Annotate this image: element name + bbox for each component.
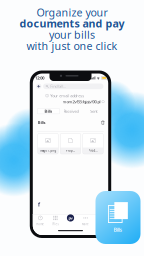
- button[interactable]: Delete: [101, 120, 104, 124]
- staticText: with just one click: [26, 39, 117, 53]
- button[interactable]: App: [63, 214, 78, 226]
- staticText: Bills: [38, 120, 46, 125]
- staticText: Organize your: [36, 5, 107, 19]
- staticText: Prod…: [88, 149, 97, 152]
- staticText: Sent: [90, 108, 97, 114]
- button[interactable]: More: [78, 214, 93, 226]
- button[interactable]: Bills: [37, 108, 60, 114]
- button[interactable]: Received: [60, 108, 82, 114]
- button[interactable]: Prop…: [60, 133, 81, 154]
- staticText: More: [82, 222, 89, 226]
- button[interactable]: Sent: [82, 108, 105, 114]
- staticText: documents and pay: [19, 16, 124, 30]
- button[interactable]: image1.png: [38, 133, 58, 154]
- staticText: 12:00: [35, 75, 44, 80]
- staticText: pv: [68, 215, 72, 221]
- staticText: f: [38, 201, 40, 208]
- staticText: Find bill…: [50, 84, 66, 89]
- button[interactable]: Me: [93, 214, 108, 226]
- staticText: Prop…: [66, 149, 75, 152]
- staticText: Bills: [44, 108, 52, 114]
- staticText: Home: [36, 222, 44, 226]
- staticText: Files: [52, 222, 58, 226]
- button[interactable]: Prod…: [83, 133, 103, 154]
- staticText: Your email address: [50, 93, 84, 98]
- staticText: Bills: [113, 226, 122, 233]
- button[interactable]: Home: [33, 214, 48, 226]
- button[interactable]: Back: [36, 84, 41, 89]
- staticText: your bills: [49, 27, 95, 42]
- staticText: Received: [64, 108, 79, 114]
- button[interactable]: Find bill…: [43, 83, 103, 89]
- staticText: mom2vf33.fqjojv!00.pl: [63, 99, 101, 104]
- button[interactable]: Bills app: [95, 191, 140, 244]
- staticText: image1.png: [39, 149, 56, 152]
- button[interactable]: Files: [48, 214, 63, 226]
